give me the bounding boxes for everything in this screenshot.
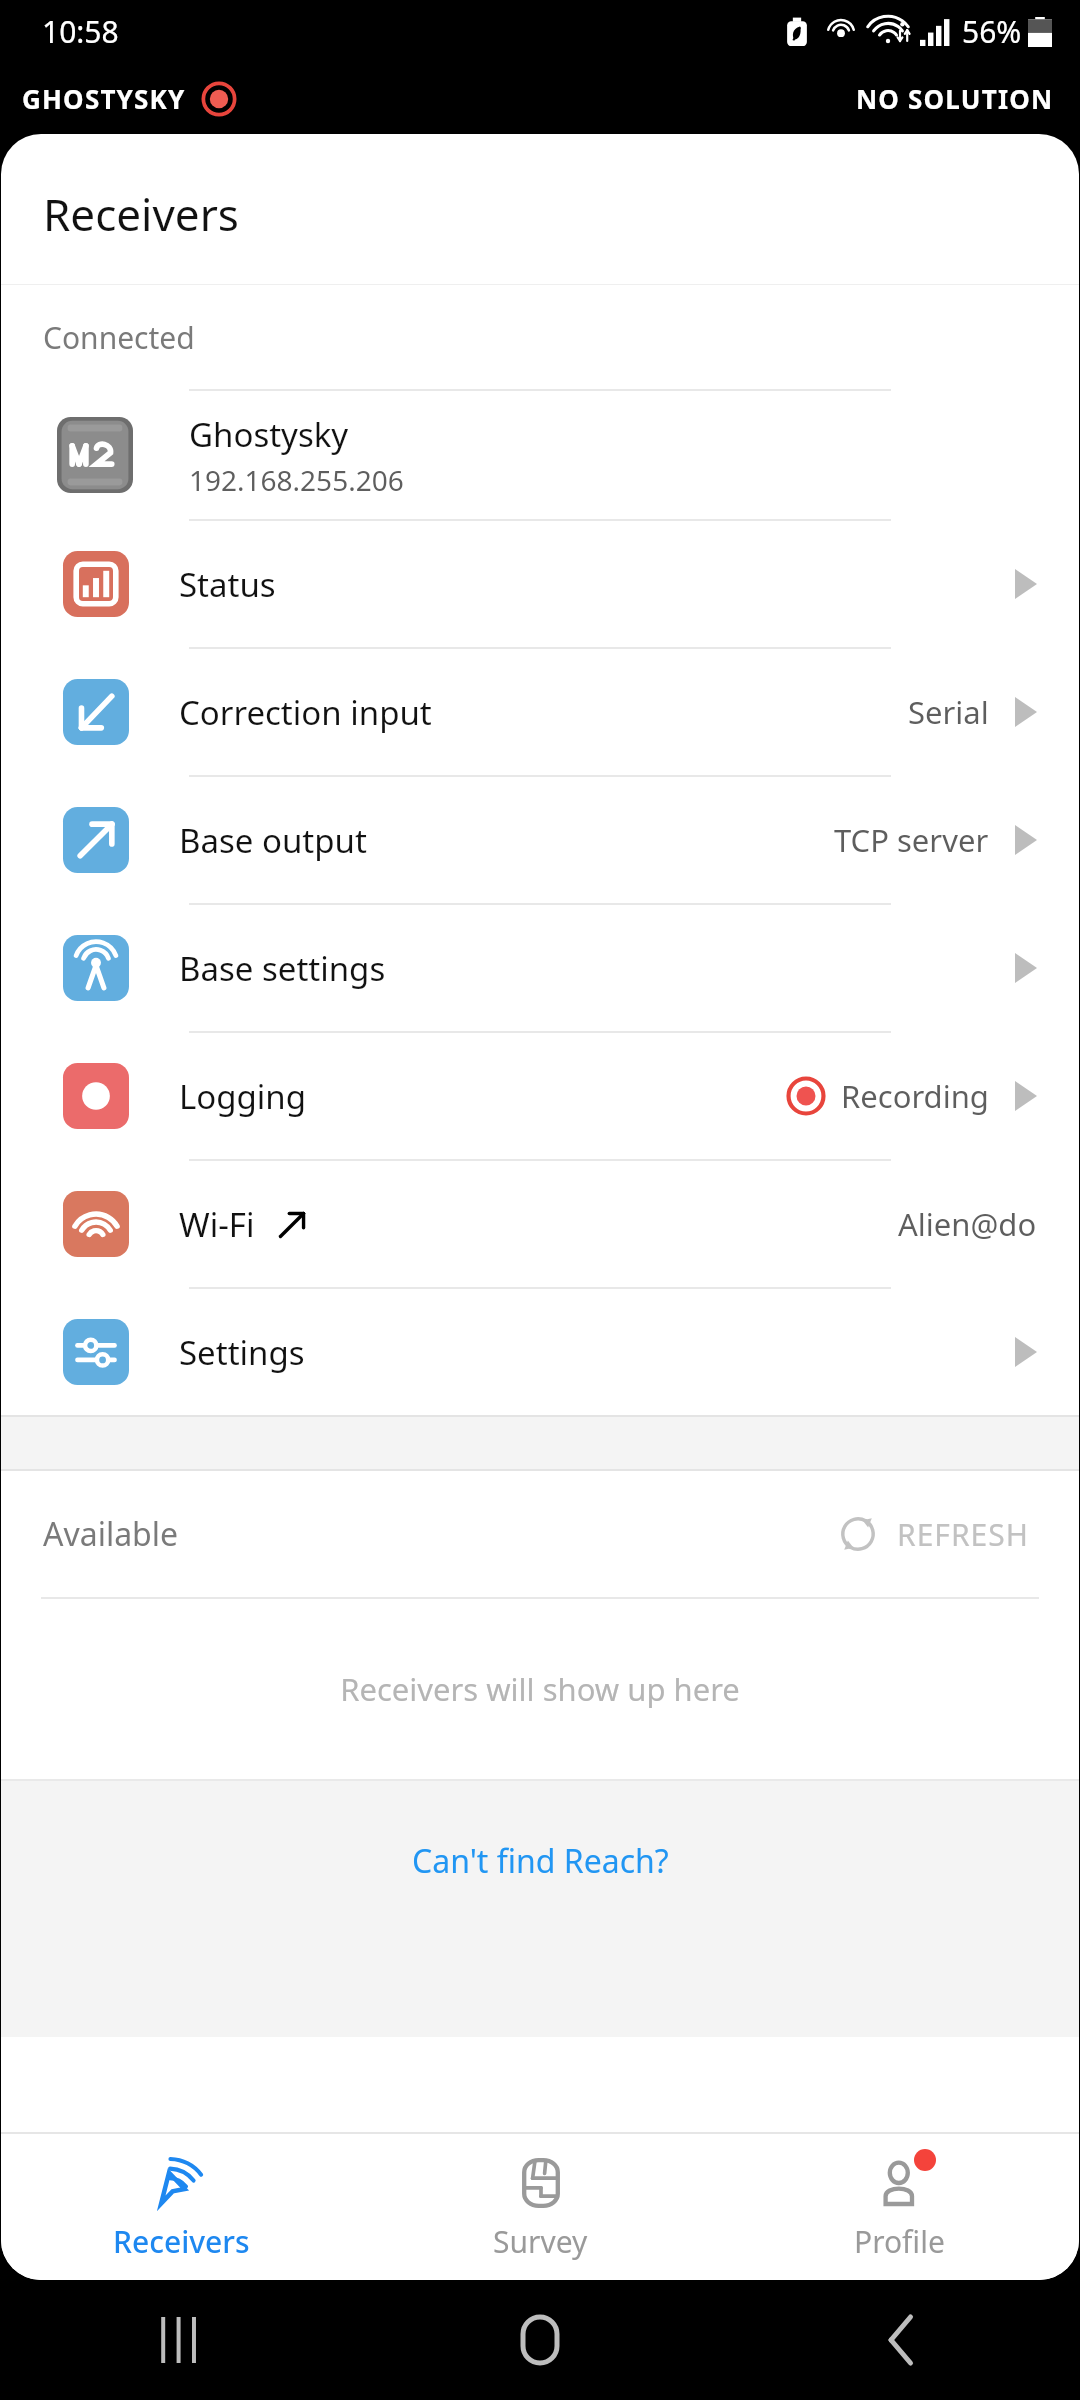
- staticText: Can't find Reach?: [412, 1839, 669, 1883]
- staticText: 192.168.255.206: [189, 461, 404, 499]
- staticText: Recording: [841, 1075, 989, 1117]
- button[interactable]: Correction input: [1, 649, 1079, 775]
- button[interactable]: Can't find Reach?: [392, 1831, 689, 1891]
- staticText: Receivers: [43, 184, 239, 244]
- button[interactable]: Profile: [720, 2134, 1079, 2280]
- button[interactable]: Recent apps: [150, 2310, 210, 2370]
- button[interactable]: Receivers: [1, 2134, 361, 2280]
- staticText: Receivers will show up here: [340, 1668, 740, 1710]
- staticText: Logging: [179, 1074, 307, 1119]
- button[interactable]: Home: [510, 2310, 570, 2370]
- staticText: GHOSTYSKY: [22, 81, 186, 116]
- staticText: Available: [43, 1512, 179, 1556]
- button[interactable]: Survey: [361, 2134, 720, 2280]
- button[interactable]: Ghostysky: [1, 391, 1079, 519]
- staticText: Status: [179, 562, 276, 607]
- staticText: NO SOLUTION: [856, 81, 1054, 116]
- staticText: Profile: [854, 2221, 945, 2262]
- button[interactable]: Status: [1, 521, 1079, 647]
- staticText: Serial: [908, 691, 989, 733]
- staticText: TCP server: [834, 819, 989, 861]
- staticText: Correction input: [179, 690, 432, 735]
- button[interactable]: Back: [870, 2310, 930, 2370]
- staticText: 10:58: [42, 11, 119, 52]
- button[interactable]: Base settings: [1, 905, 1079, 1031]
- staticText: Connected: [43, 317, 195, 358]
- staticText: REFRESH: [897, 1514, 1029, 1555]
- button[interactable]: Logging: [1, 1033, 1079, 1159]
- staticText: 56%: [962, 11, 1022, 52]
- button[interactable]: Settings: [1, 1289, 1079, 1415]
- staticText: Wi-Fi: [179, 1202, 255, 1247]
- staticText: Base settings: [179, 946, 386, 991]
- button[interactable]: REFRESH: [827, 1503, 1037, 1565]
- staticText: Settings: [179, 1330, 305, 1375]
- button[interactable]: Wi-Fi: [1, 1161, 1079, 1287]
- staticText: Receivers: [113, 2221, 250, 2262]
- staticText: Base output: [179, 818, 367, 863]
- staticText: Alien@do: [898, 1203, 1037, 1245]
- staticText: Ghostysky: [189, 412, 349, 457]
- button[interactable]: Base output: [1, 777, 1079, 903]
- staticText: Survey: [493, 2221, 588, 2262]
